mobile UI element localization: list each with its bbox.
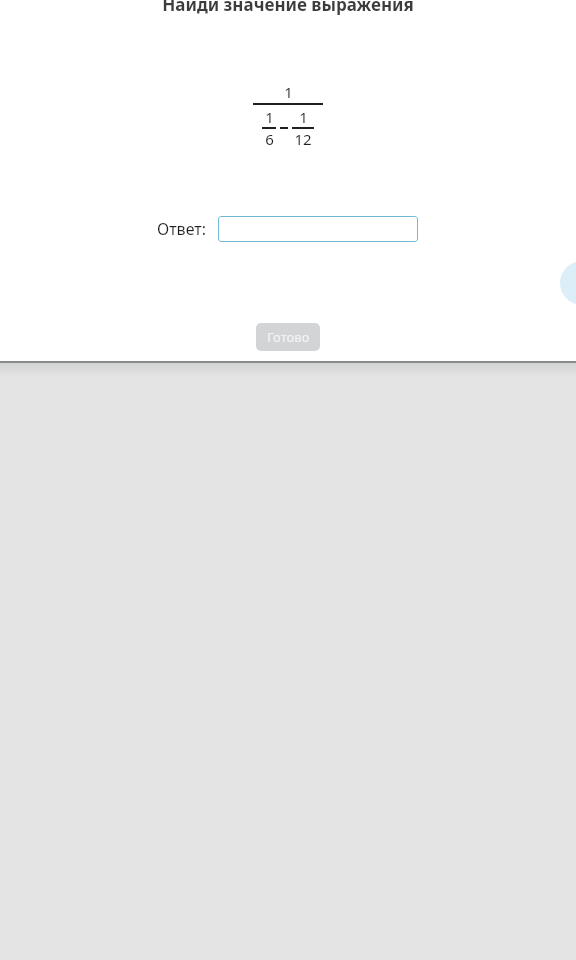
staticText: 1	[299, 107, 308, 127]
button[interactable]: Помощь	[560, 261, 576, 305]
staticText: Найди значение выражения	[162, 0, 414, 16]
staticText: 1	[284, 82, 293, 102]
staticText: 6	[265, 129, 274, 149]
staticText: 12	[294, 129, 312, 149]
button[interactable]: Готово	[256, 323, 320, 351]
button[interactable]	[218, 216, 418, 242]
staticText: Ответ:	[157, 218, 207, 240]
staticText: 1	[265, 107, 274, 127]
staticText: Готово	[267, 328, 310, 346]
